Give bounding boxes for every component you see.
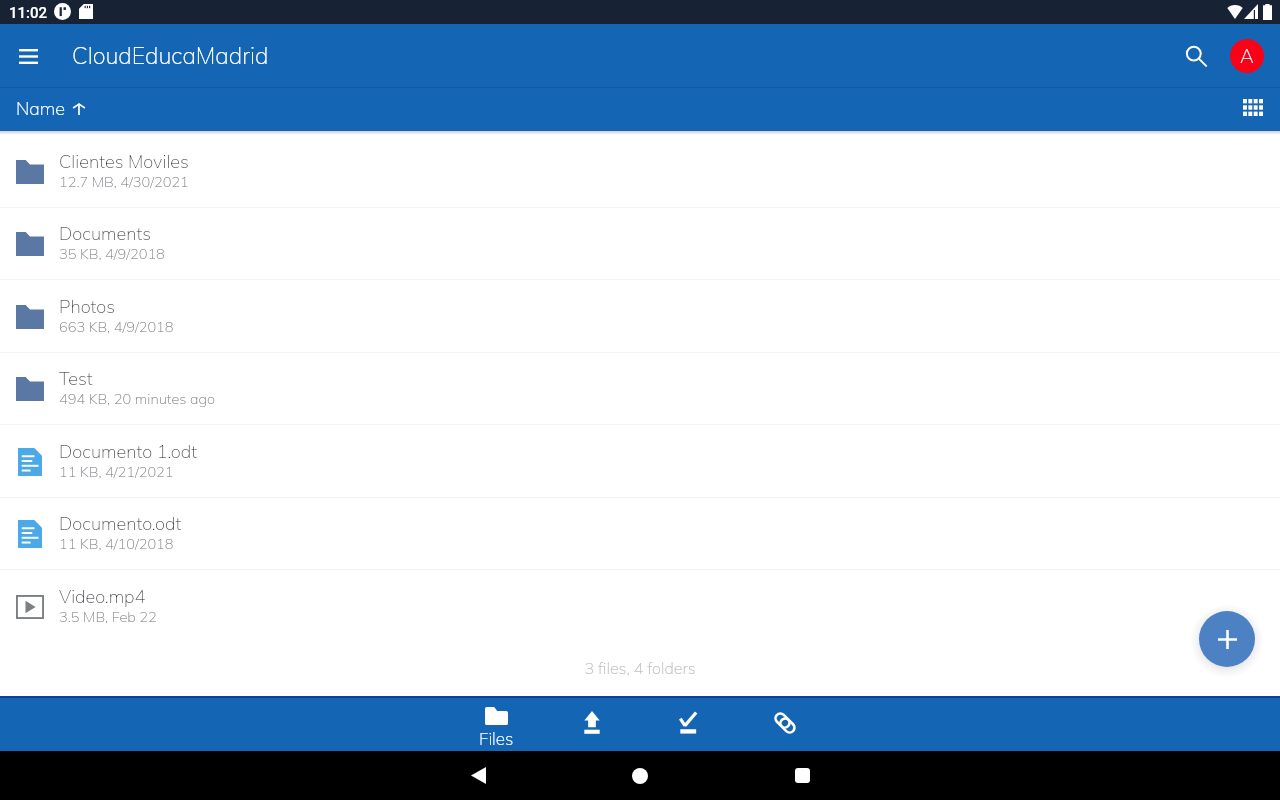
staticText: CloudEducaMadrid [72, 41, 269, 70]
staticText: 11 KB, 4/10/2018 [59, 534, 174, 552]
staticText: 494 KB, 20 minutes ago [59, 389, 216, 407]
staticText: Video.mp4 [59, 585, 146, 608]
button[interactable]: Test [0, 352, 1280, 425]
staticText: A [1240, 44, 1254, 68]
button[interactable]: Shared links [742, 698, 828, 751]
button[interactable]: Activity [645, 698, 731, 751]
staticText: 3.5 MB, Feb 22 [59, 607, 157, 625]
button[interactable]: Uploads [549, 698, 635, 751]
staticText: 35 KB, 4/9/2018 [59, 244, 165, 262]
button[interactable]: Documento 1.odt [0, 425, 1280, 498]
button[interactable]: Account [1223, 32, 1271, 80]
button[interactable]: Documents [0, 207, 1280, 280]
staticText: 12.7 MB, 4/30/2021 [59, 172, 189, 190]
button[interactable]: Search [1170, 30, 1222, 82]
button[interactable]: Switch to grid view [1233, 87, 1273, 127]
button[interactable]: Recent apps [770, 751, 834, 800]
button[interactable]: Files [453, 698, 539, 751]
staticText: Test [59, 367, 93, 390]
button[interactable]: Open navigation menu [0, 28, 56, 84]
button[interactable]: Name [16, 97, 86, 120]
staticText: 3 files, 4 folders [0, 658, 1280, 678]
staticText: 663 KB, 4/9/2018 [59, 317, 174, 335]
staticText: 11 KB, 4/21/2021 [59, 462, 174, 480]
staticText: Files [479, 728, 514, 749]
staticText: Documento.odt [59, 512, 182, 535]
button[interactable]: Add new file [1199, 611, 1255, 667]
staticText: Documents [59, 222, 152, 245]
staticText: 11:02 [9, 4, 48, 22]
button[interactable]: Clientes Moviles [0, 135, 1280, 208]
staticText: Photos [59, 295, 116, 318]
button[interactable]: Back [446, 751, 510, 800]
button[interactable]: Video.mp4 [0, 570, 1280, 643]
button[interactable]: Documento.odt [0, 497, 1280, 570]
staticText: Clientes Moviles [59, 150, 189, 173]
staticText: Documento 1.odt [59, 440, 198, 463]
button[interactable]: Photos [0, 280, 1280, 353]
button[interactable]: Home [608, 751, 672, 800]
staticText: Name [16, 97, 66, 120]
